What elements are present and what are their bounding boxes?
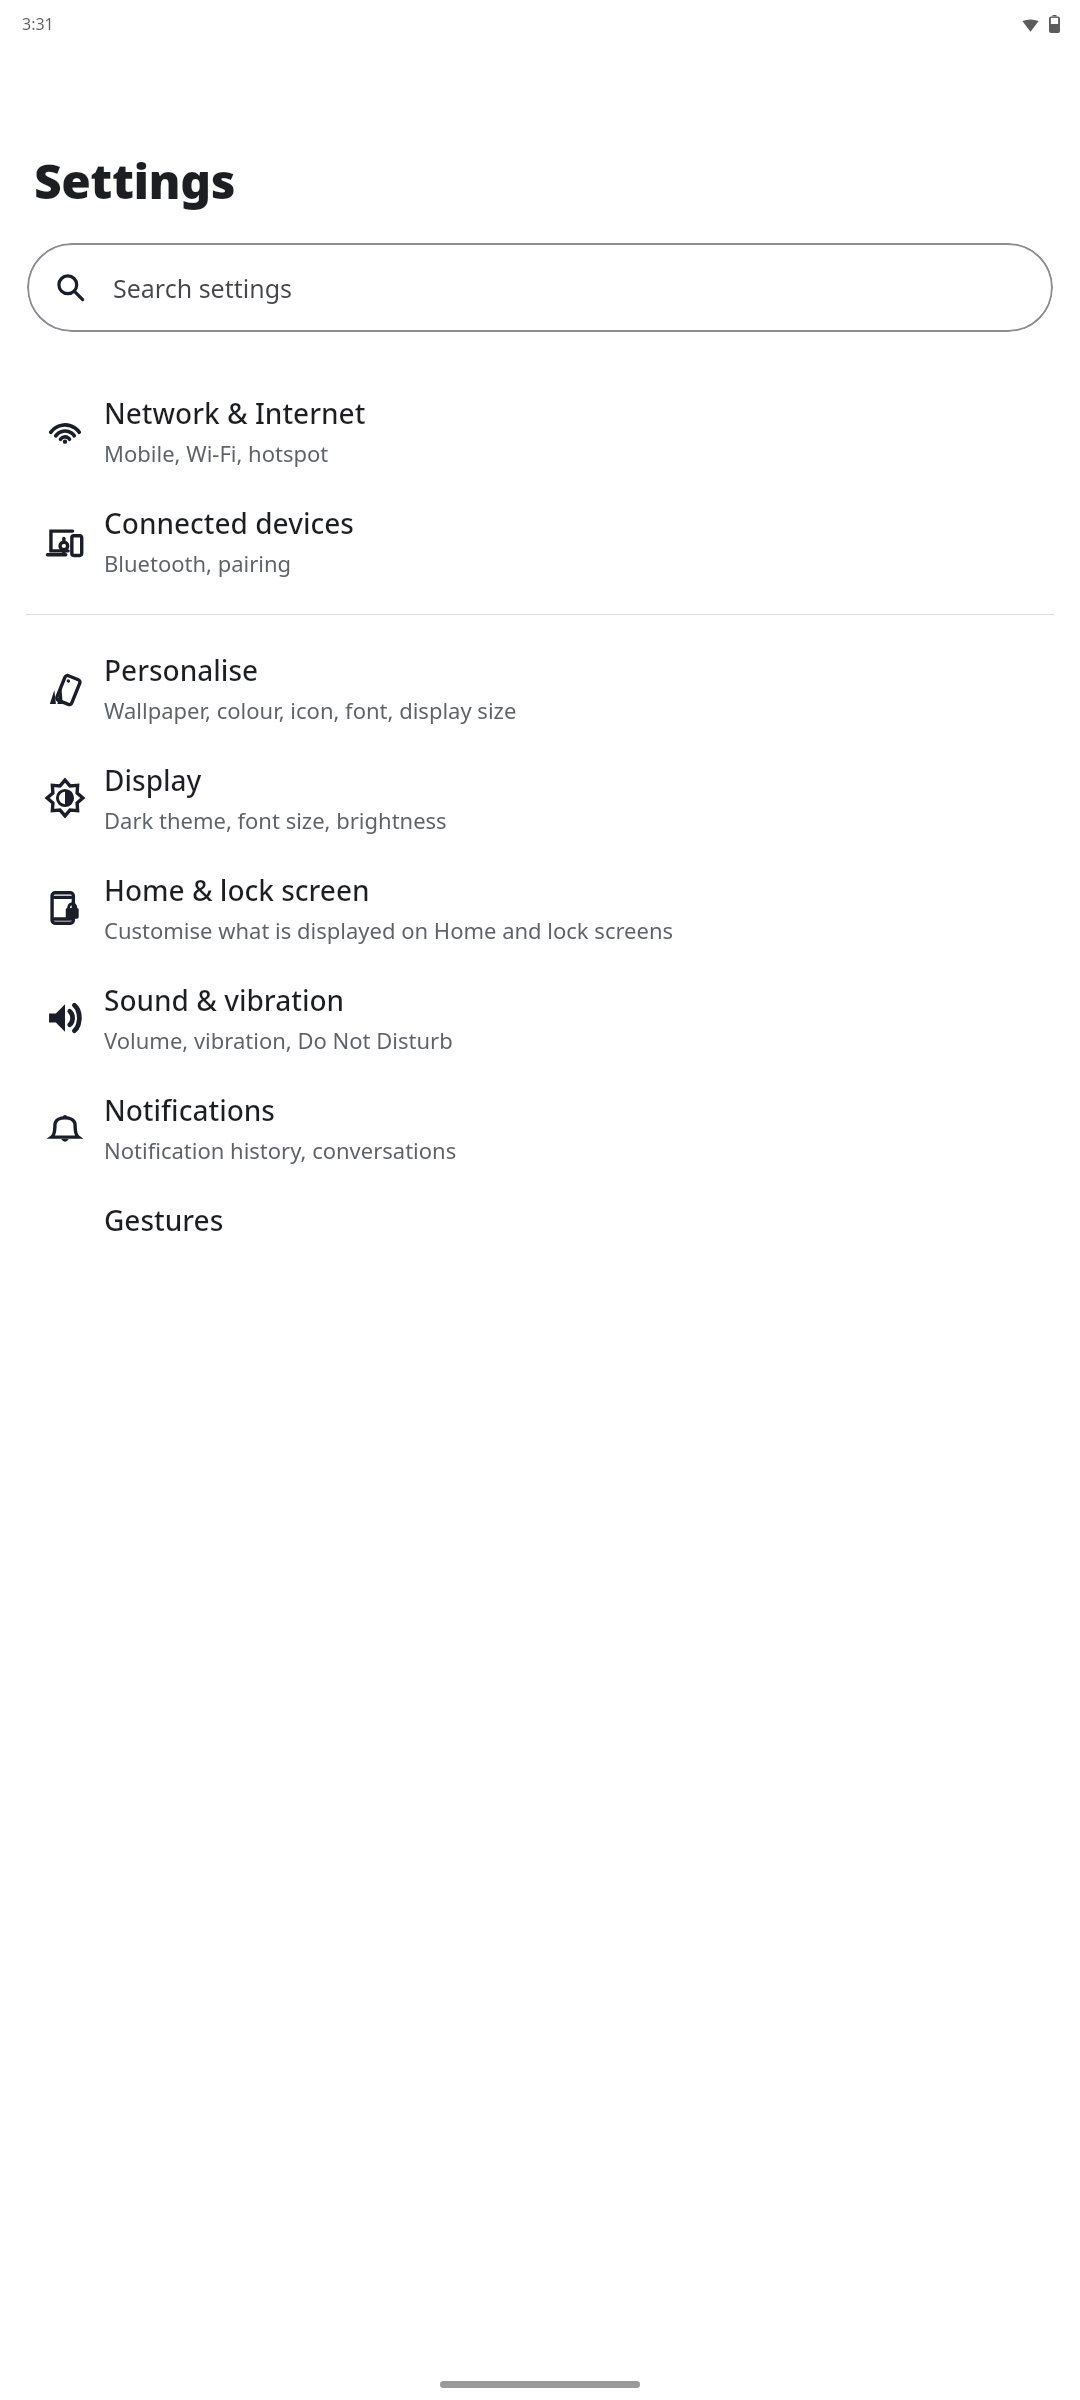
button[interactable]: Connected devices xyxy=(0,486,1080,596)
other: Connected devices xyxy=(46,522,84,560)
other: Notifications xyxy=(46,1109,84,1147)
button[interactable]: Network and Internet xyxy=(0,376,1080,486)
button[interactable]: Search settings xyxy=(27,243,1053,332)
staticText: Display xyxy=(104,761,202,799)
button[interactable]: Personalise xyxy=(0,633,1080,743)
staticText: 3:31 xyxy=(22,13,54,35)
button[interactable]: Display xyxy=(0,743,1080,853)
other: Network and Internet xyxy=(46,412,84,450)
staticText: Home & lock screen xyxy=(104,871,370,909)
other: Home and lock screen xyxy=(46,889,84,927)
button[interactable]: Sound and vibration xyxy=(0,963,1080,1073)
other: Display xyxy=(46,779,84,817)
other: Sound and vibration xyxy=(46,999,84,1037)
staticText: Personalise xyxy=(104,651,259,689)
button[interactable]: Notifications xyxy=(0,1073,1080,1183)
staticText: Search settings xyxy=(113,271,293,305)
staticText: Dark theme, font size, brightness xyxy=(104,805,447,835)
staticText: Bluetooth, pairing xyxy=(104,548,292,578)
other: Personalise xyxy=(46,669,84,707)
staticText: Settings xyxy=(34,148,235,213)
button[interactable]: Gestures xyxy=(0,1183,1080,1257)
staticText: Notifications xyxy=(104,1091,275,1129)
staticText: Customise what is displayed on Home and … xyxy=(104,915,674,945)
staticText: Volume, vibration, Do Not Disturb xyxy=(104,1025,453,1055)
staticText: Notification history, conversations xyxy=(104,1135,457,1165)
staticText: Mobile, Wi-Fi, hotspot xyxy=(104,438,329,468)
staticText: Sound & vibration xyxy=(104,981,345,1019)
button[interactable]: Home and lock screen xyxy=(0,853,1080,963)
staticText: Gestures xyxy=(104,1201,224,1239)
staticText: Connected devices xyxy=(104,504,354,542)
staticText: Network & Internet xyxy=(104,394,366,432)
staticText: Wallpaper, colour, icon, font, display s… xyxy=(104,695,517,725)
